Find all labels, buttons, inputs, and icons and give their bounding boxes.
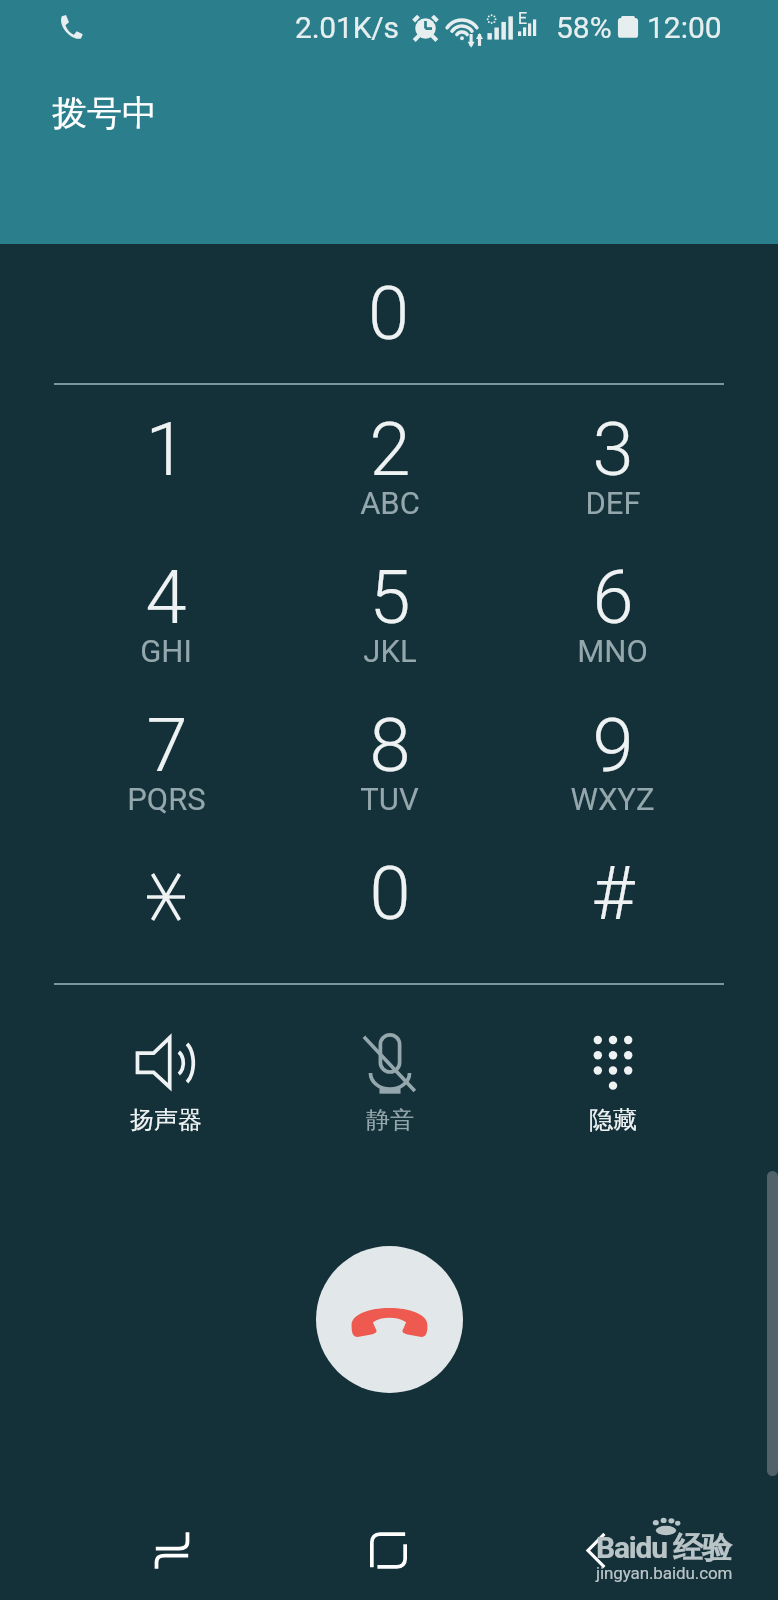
button[interactable]: Recent apps [64,1480,280,1600]
staticText: 4 [145,554,187,641]
staticText: 0 [369,850,411,937]
button[interactable]: 1 [54,385,278,533]
staticText: jingyan.baidu.com [596,1563,733,1583]
staticText: JKL [363,633,417,669]
staticText: GHI [140,633,192,669]
staticText: ABC [360,485,420,521]
staticText: 拨号中 [52,91,157,135]
button[interactable]: 0 [278,829,501,977]
staticText: 8 [369,702,411,789]
staticText: 9 [592,702,634,789]
staticText: 0 [368,270,410,357]
button[interactable]: 3 [501,385,724,533]
button[interactable]: 7 [54,681,278,829]
staticText: 5 [369,554,411,641]
staticText: E [518,9,528,28]
button[interactable]: Home [280,1480,497,1600]
button[interactable]: 2 [278,385,501,533]
staticText: PQRS [127,781,206,817]
button[interactable]: 8 [278,681,501,829]
button[interactable]: 静音 [278,985,501,1175]
button[interactable]: 隐藏 [501,985,724,1175]
staticText: DEF [585,485,641,521]
staticText: 1 [145,406,187,493]
button[interactable]: Back [497,1480,714,1600]
staticText: MNO [577,633,648,669]
staticText: 58% [556,10,612,45]
staticText: 扬声器 [130,1105,202,1135]
button[interactable]: 5 [278,533,501,681]
staticText: 12:00 [647,10,722,45]
staticText: 2 [369,406,411,493]
staticText: 静音 [366,1105,414,1135]
button[interactable]: # [501,829,724,977]
button[interactable]: 6 [501,533,724,681]
staticText: 2.01K/s [295,10,399,45]
staticText: Baidu 经验 [596,1529,731,1567]
staticText: TUV [360,781,419,817]
staticText: 6 [592,554,634,641]
staticText: 7 [146,702,188,789]
staticText: # [591,850,635,937]
button[interactable]: 扬声器 [54,985,278,1175]
staticText: WXYZ [570,781,655,817]
button[interactable]: 4 [54,533,278,681]
button[interactable] [54,829,278,977]
staticText: 隐藏 [589,1105,637,1135]
button[interactable]: End call [316,1246,463,1393]
staticText: 3 [592,406,634,493]
button[interactable]: 9 [501,681,724,829]
